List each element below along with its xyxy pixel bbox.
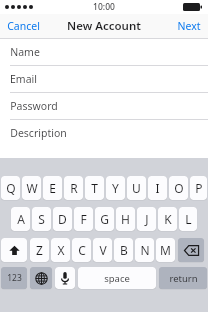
staticText: W: [26, 180, 38, 196]
staticText: L: [185, 211, 192, 227]
staticText: Password: [10, 99, 58, 113]
staticText: Description: [10, 126, 67, 140]
button[interactable]: R: [64, 176, 83, 200]
staticText: Q: [6, 180, 16, 196]
staticText: Z: [36, 242, 43, 258]
staticText: F: [80, 211, 87, 227]
staticText: E: [49, 180, 56, 196]
button[interactable]: Z: [30, 238, 49, 262]
button[interactable]: Description: [0, 120, 208, 146]
button[interactable]: Name: [0, 39, 208, 65]
staticText: C: [78, 242, 86, 258]
staticText: return: [169, 272, 198, 285]
button[interactable]: S: [32, 207, 51, 231]
button[interactable]: return: [159, 267, 207, 289]
staticText: Email: [10, 72, 37, 86]
staticText: A: [17, 211, 25, 227]
staticText: O: [174, 180, 184, 196]
staticText: 10:00: [93, 1, 115, 13]
button[interactable]: Cancel: [0, 16, 47, 36]
button[interactable]: U: [127, 176, 146, 200]
button[interactable]: J: [137, 207, 156, 231]
button[interactable]: K: [158, 207, 177, 231]
button[interactable]: H: [116, 207, 135, 231]
staticText: P: [195, 180, 203, 196]
staticText: D: [58, 211, 67, 227]
staticText: U: [132, 180, 141, 196]
button[interactable]: D: [53, 207, 72, 231]
staticText: I: [155, 180, 160, 196]
button[interactable]: I: [148, 176, 167, 200]
staticText: New Account: [67, 18, 141, 34]
staticText: B: [120, 242, 128, 258]
button[interactable]: E: [43, 176, 62, 200]
button[interactable]: Next: [170, 16, 208, 36]
staticText: 123: [7, 272, 22, 284]
button[interactable]: O: [169, 176, 188, 200]
button[interactable]: F: [74, 207, 93, 231]
button[interactable]: C: [72, 238, 91, 262]
button[interactable]: X: [51, 238, 70, 262]
button[interactable]: space: [78, 267, 156, 289]
button[interactable]: Email: [0, 66, 208, 92]
staticText: K: [164, 211, 172, 227]
button[interactable]: V: [93, 238, 112, 262]
button[interactable]: Password: [0, 93, 208, 119]
staticText: T: [91, 180, 98, 196]
button[interactable]: A: [11, 207, 30, 231]
staticText: V: [99, 242, 107, 258]
button[interactable]: Q: [1, 176, 20, 200]
button[interactable]: Shift: [1, 238, 27, 262]
staticText: R: [70, 180, 78, 196]
staticText: H: [121, 211, 130, 227]
button[interactable]: 123: [1, 267, 27, 289]
button[interactable]: Backspace: [178, 238, 204, 262]
button[interactable]: G: [95, 207, 114, 231]
button[interactable]: B: [114, 238, 133, 262]
staticText: Next: [177, 19, 201, 33]
staticText: space: [104, 272, 130, 285]
button[interactable]: Y: [106, 176, 125, 200]
staticText: X: [57, 242, 65, 258]
staticText: Name: [10, 45, 40, 59]
button[interactable]: N: [135, 238, 154, 262]
button[interactable]: M: [156, 238, 175, 262]
staticText: S: [38, 211, 45, 227]
staticText: M: [160, 242, 171, 258]
button[interactable]: T: [85, 176, 104, 200]
button[interactable]: Switch keyboard: [30, 267, 52, 289]
staticText: Cancel: [7, 19, 40, 33]
staticText: G: [100, 211, 109, 227]
button[interactable]: W: [22, 176, 41, 200]
staticText: N: [140, 242, 150, 258]
button[interactable]: P: [190, 176, 207, 200]
button[interactable]: L: [179, 207, 197, 231]
staticText: J: [145, 211, 149, 227]
button[interactable]: Dictate: [55, 267, 75, 289]
staticText: Y: [112, 180, 119, 196]
